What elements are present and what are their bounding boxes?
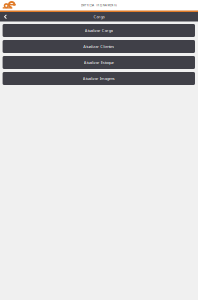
button[interactable]: Back — [0, 12, 14, 21]
button[interactable]: Atualizar Carga — [3, 24, 195, 37]
button[interactable]: Atualizar Imagens — [3, 72, 195, 85]
button[interactable]: Atualizar Estoque — [3, 56, 195, 69]
staticText: Atualizar Carga — [85, 28, 113, 33]
staticText: Atualizar Clientes — [83, 44, 114, 49]
staticText: Atualizar Imagens — [83, 76, 115, 81]
button[interactable]: Atualizar Clientes — [3, 40, 195, 53]
staticText: Atualizar Estoque — [84, 60, 114, 65]
staticText: Carga — [93, 14, 104, 19]
staticText: EMPRESA TREINAMENTO — [81, 3, 117, 7]
